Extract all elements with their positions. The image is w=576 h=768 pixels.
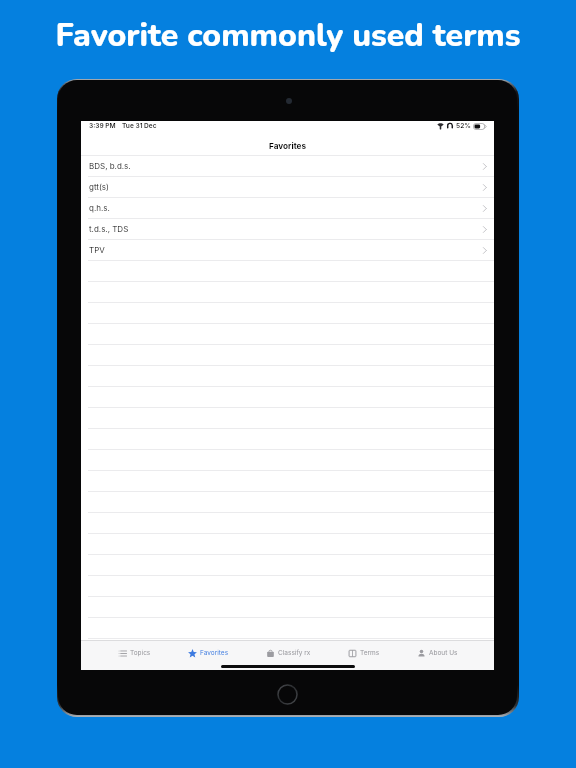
staticText: Favorite commonly used terms: [55, 14, 521, 58]
staticText: t.d.s., TDS: [89, 224, 129, 234]
staticText: Topics: [130, 649, 151, 657]
button[interactable]: TPV: [81, 240, 494, 260]
button[interactable]: gtt(s): [81, 177, 494, 197]
staticText: 3:39 PM: [89, 122, 116, 130]
staticText: q.h.s.: [89, 203, 110, 213]
button[interactable]: Topics: [118, 645, 151, 661]
button[interactable]: q.h.s.: [81, 198, 494, 218]
button[interactable]: BDS, b.d.s.: [81, 156, 494, 176]
staticText: Favorites: [200, 649, 229, 657]
staticText: Favorites: [269, 141, 307, 151]
staticText: About Us: [429, 649, 458, 657]
button[interactable]: Classify rx: [266, 645, 311, 661]
button[interactable]: Favorites: [188, 645, 229, 661]
button[interactable]: Terms: [348, 645, 380, 661]
staticText: Tue 31 Dec: [122, 122, 157, 130]
staticText: TPV: [89, 245, 105, 255]
staticText: Classify rx: [278, 649, 311, 657]
staticText: BDS, b.d.s.: [89, 161, 131, 171]
staticText: Terms: [360, 649, 380, 657]
staticText: 52%: [456, 122, 471, 130]
button[interactable]: t.d.s., TDS: [81, 219, 494, 239]
button[interactable]: About Us: [417, 645, 458, 661]
staticText: gtt(s): [89, 182, 110, 192]
